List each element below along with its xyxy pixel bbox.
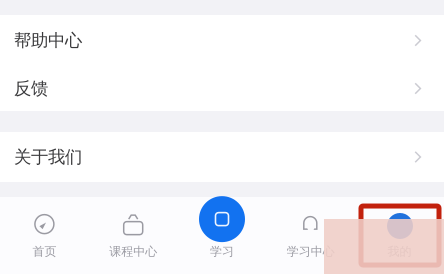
button[interactable]: 关于我们 (0, 132, 444, 182)
button[interactable]: 课程中心 (89, 197, 178, 274)
staticText: 帮助中心 (14, 30, 82, 51)
button[interactable]: 帮助中心 (0, 15, 444, 66)
button[interactable]: 学习 (178, 197, 266, 274)
staticText: 我的 (388, 244, 412, 259)
staticText: 反馈 (14, 78, 48, 99)
staticText: 学习中心 (287, 244, 335, 259)
staticText: 学习 (210, 244, 234, 259)
button[interactable]: 学习中心 (266, 197, 355, 274)
button[interactable]: 首页 (0, 197, 89, 274)
button[interactable]: 反馈 (0, 66, 444, 111)
staticText: 课程中心 (109, 244, 157, 259)
staticText: 首页 (32, 244, 56, 259)
staticText: 关于我们 (14, 146, 82, 168)
button[interactable]: 我的 (355, 197, 444, 274)
